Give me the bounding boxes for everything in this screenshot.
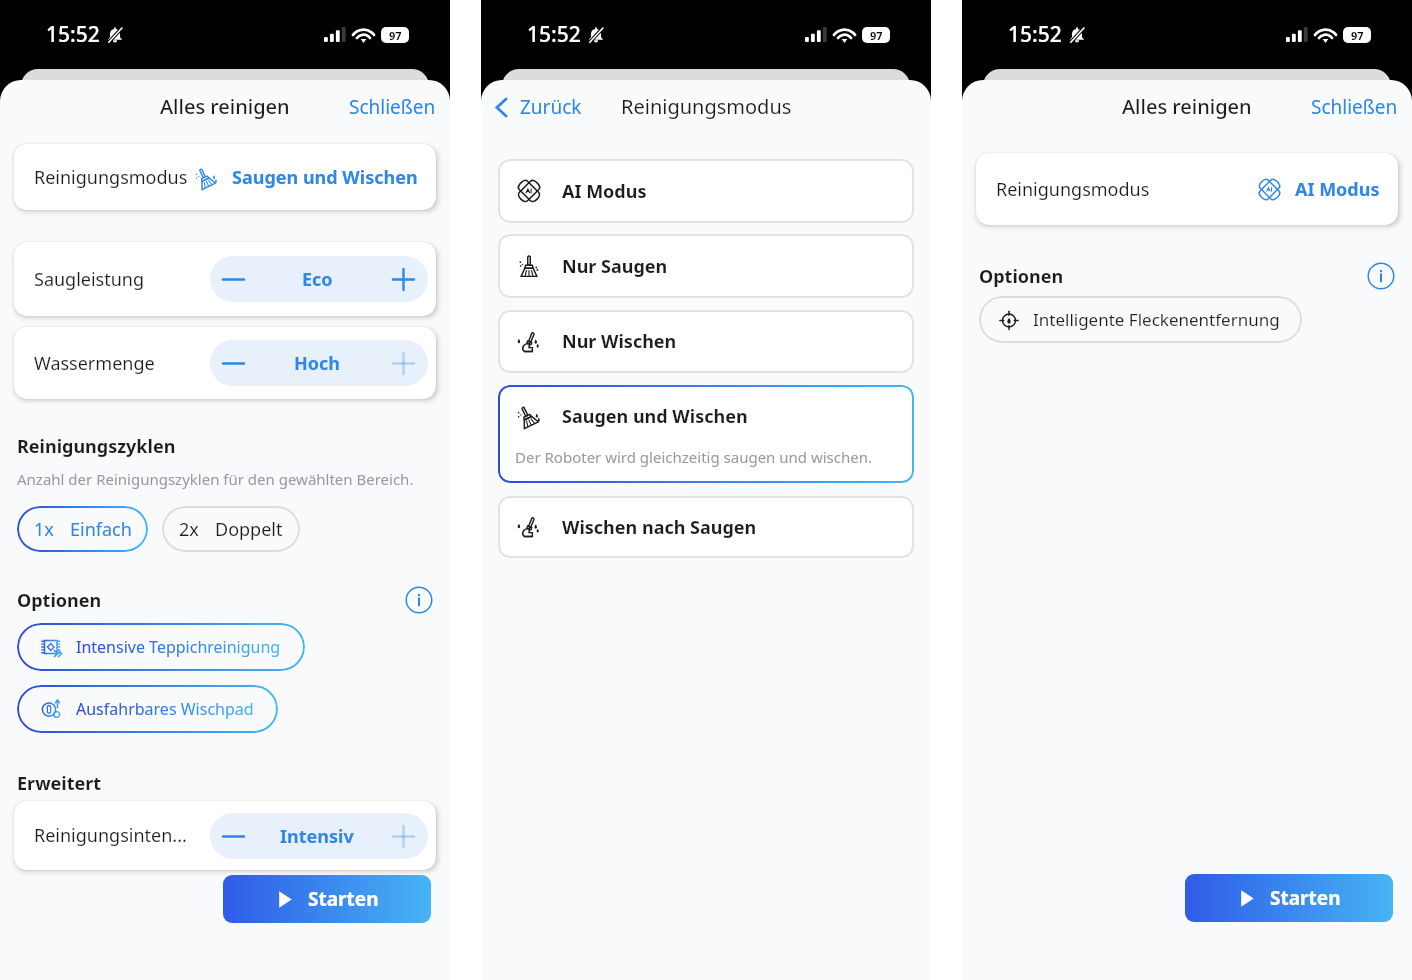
button[interactable]: Erhöhen: [378, 256, 428, 302]
button[interactable]: Verringern: [210, 340, 256, 386]
staticText: Zurück: [520, 94, 582, 120]
staticText: Der Roboter wird gleichzeitig saugen und…: [515, 447, 873, 467]
staticText: 97: [870, 28, 883, 43]
staticText: 1x: [34, 517, 54, 542]
staticText: Alles reinigen: [1122, 93, 1252, 120]
button[interactable]: Erhöhen: [378, 813, 428, 859]
button[interactable]: Schließen: [333, 86, 450, 128]
staticText: Ausfahrbares Wischpad: [76, 698, 254, 720]
button[interactable]: Info: [1367, 262, 1395, 290]
staticText: Reinigungsmodus: [621, 93, 792, 120]
staticText: Starten: [1270, 885, 1341, 911]
staticText: 97: [389, 28, 402, 43]
staticText: Hoch: [294, 351, 341, 376]
staticText: Schließen: [1311, 94, 1398, 120]
button[interactable]: Nur Wischen: [498, 310, 914, 373]
button[interactable]: 2x: [162, 506, 300, 552]
button[interactable]: 1x: [17, 506, 148, 552]
staticText: Wischen nach Saugen: [562, 515, 757, 540]
staticText: Intelligente Fleckenentfernung: [1033, 308, 1280, 331]
staticText: Erweitert: [17, 771, 102, 796]
staticText: 15:52: [46, 20, 100, 49]
staticText: Optionen: [979, 264, 1064, 289]
button[interactable]: Intensive Teppichreinigung: [17, 623, 305, 671]
staticText: 15:52: [527, 20, 581, 49]
button[interactable]: Verringern: [210, 813, 256, 859]
button[interactable]: Wischen nach Saugen: [498, 496, 914, 558]
button[interactable]: Starten: [1185, 874, 1393, 922]
staticText: Intensive Teppichreinigung: [76, 636, 281, 658]
button[interactable]: Zurück: [481, 86, 598, 128]
staticText: Starten: [308, 886, 379, 912]
staticText: Schließen: [349, 94, 436, 120]
staticText: Saugen und Wischen: [562, 404, 748, 429]
staticText: Saugleistung: [34, 267, 145, 292]
staticText: Optionen: [17, 588, 102, 613]
staticText: AI Modus: [562, 179, 647, 204]
button[interactable]: Erhöhen: [378, 340, 428, 386]
staticText: Eco: [302, 267, 333, 292]
button[interactable]: Saugen und Wischen: [498, 385, 914, 483]
staticText: Nur Wischen: [562, 329, 677, 354]
button[interactable]: Info: [405, 586, 433, 614]
button[interactable]: Starten: [223, 875, 431, 923]
button[interactable]: Ausfahrbares Wischpad: [17, 685, 278, 733]
staticText: Reinigungsmodus: [34, 165, 188, 190]
staticText: Nur Saugen: [562, 254, 668, 279]
staticText: 2x: [179, 517, 199, 542]
button[interactable]: Nur Saugen: [498, 234, 914, 298]
staticText: Alles reinigen: [160, 93, 290, 120]
button[interactable]: Intelligente Fleckenentfernung: [979, 296, 1302, 343]
staticText: Reinigungsinten...: [34, 823, 187, 848]
button[interactable]: AI Modus: [498, 159, 914, 223]
staticText: Wassermenge: [34, 351, 155, 376]
staticText: Anzahl der Reinigungszyklen für den gewä…: [17, 469, 414, 489]
button[interactable]: Reinigungsmodus: [976, 153, 1398, 225]
staticText: Reinigungszyklen: [17, 434, 176, 459]
staticText: Saugen und Wischen: [232, 165, 418, 190]
button[interactable]: Verringern: [210, 256, 256, 302]
button[interactable]: Schließen: [1295, 86, 1412, 128]
staticText: Intensiv: [280, 824, 354, 849]
staticText: 15:52: [1008, 20, 1062, 49]
button[interactable]: Reinigungsmodus: [14, 144, 436, 210]
staticText: Reinigungsmodus: [996, 177, 1150, 202]
staticText: Doppelt: [215, 517, 283, 542]
staticText: 97: [1351, 28, 1364, 43]
staticText: Einfach: [70, 517, 132, 542]
staticText: AI Modus: [1295, 177, 1380, 202]
